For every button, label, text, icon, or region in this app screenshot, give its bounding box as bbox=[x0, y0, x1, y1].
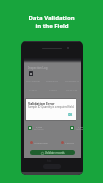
button[interactable]: 18 warnings bbox=[30, 140, 48, 145]
staticText: htc bbox=[47, 159, 52, 163]
staticText: 3 errors bbox=[65, 141, 74, 144]
button[interactable]: 1,203 bbox=[70, 124, 83, 132]
button[interactable]: 3 errors bbox=[61, 140, 74, 145]
staticText: 09:42 AM bbox=[66, 88, 77, 91]
staticText: VERIFIED bbox=[76, 128, 83, 131]
button[interactable]: OK bbox=[66, 112, 75, 118]
staticText: Sample ID bbox=[46, 79, 59, 82]
staticText: Collected At bbox=[65, 79, 79, 82]
staticText: S-0097 bbox=[49, 88, 57, 91]
button[interactable]: Validate records bbox=[30, 150, 75, 155]
staticText: 2,450 bbox=[36, 125, 43, 128]
staticText: A-2241 bbox=[29, 88, 38, 91]
staticText: in the Field bbox=[35, 22, 69, 30]
staticText: Lot Number bbox=[26, 79, 41, 82]
staticText: Sample ID Quantity is a required field. bbox=[28, 105, 75, 109]
button[interactable]: 2,450 bbox=[28, 124, 44, 132]
button[interactable]: Sample ID bbox=[43, 76, 62, 85]
staticText: Validation Error bbox=[28, 101, 55, 106]
staticText: Inspection Log bbox=[28, 66, 48, 70]
staticText: Data Validation bbox=[28, 14, 75, 22]
button[interactable]: Lot Number bbox=[24, 76, 43, 85]
staticText: RECORDS bbox=[34, 128, 44, 131]
staticText: Validate records bbox=[45, 151, 65, 155]
staticText: 18 warnings bbox=[34, 141, 48, 144]
staticText: OK bbox=[68, 113, 73, 117]
staticText: 1,203 bbox=[78, 125, 83, 128]
button[interactable]: Collected At bbox=[62, 76, 81, 85]
